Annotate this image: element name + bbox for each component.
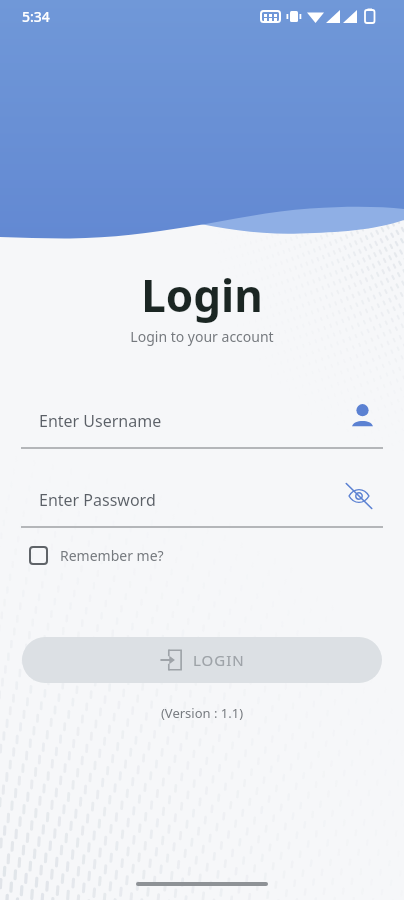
staticText: Login xyxy=(0,265,404,325)
button[interactable]: Enter Password xyxy=(21,485,383,528)
staticText: Login to your account xyxy=(0,327,404,346)
other: User xyxy=(351,404,374,427)
staticText: Remember me? xyxy=(60,546,164,565)
other: Show password xyxy=(345,482,373,510)
staticText: (Version : 1.1) xyxy=(0,704,404,722)
staticText: Enter Username xyxy=(39,410,162,432)
staticText: Enter Password xyxy=(39,489,156,511)
button[interactable]: LOGIN xyxy=(22,637,382,683)
staticText: 5:34 xyxy=(22,7,50,26)
staticText: LOGIN xyxy=(193,650,245,670)
button[interactable]: Enter Username xyxy=(21,406,383,449)
button[interactable]: Remember me? xyxy=(29,543,164,567)
